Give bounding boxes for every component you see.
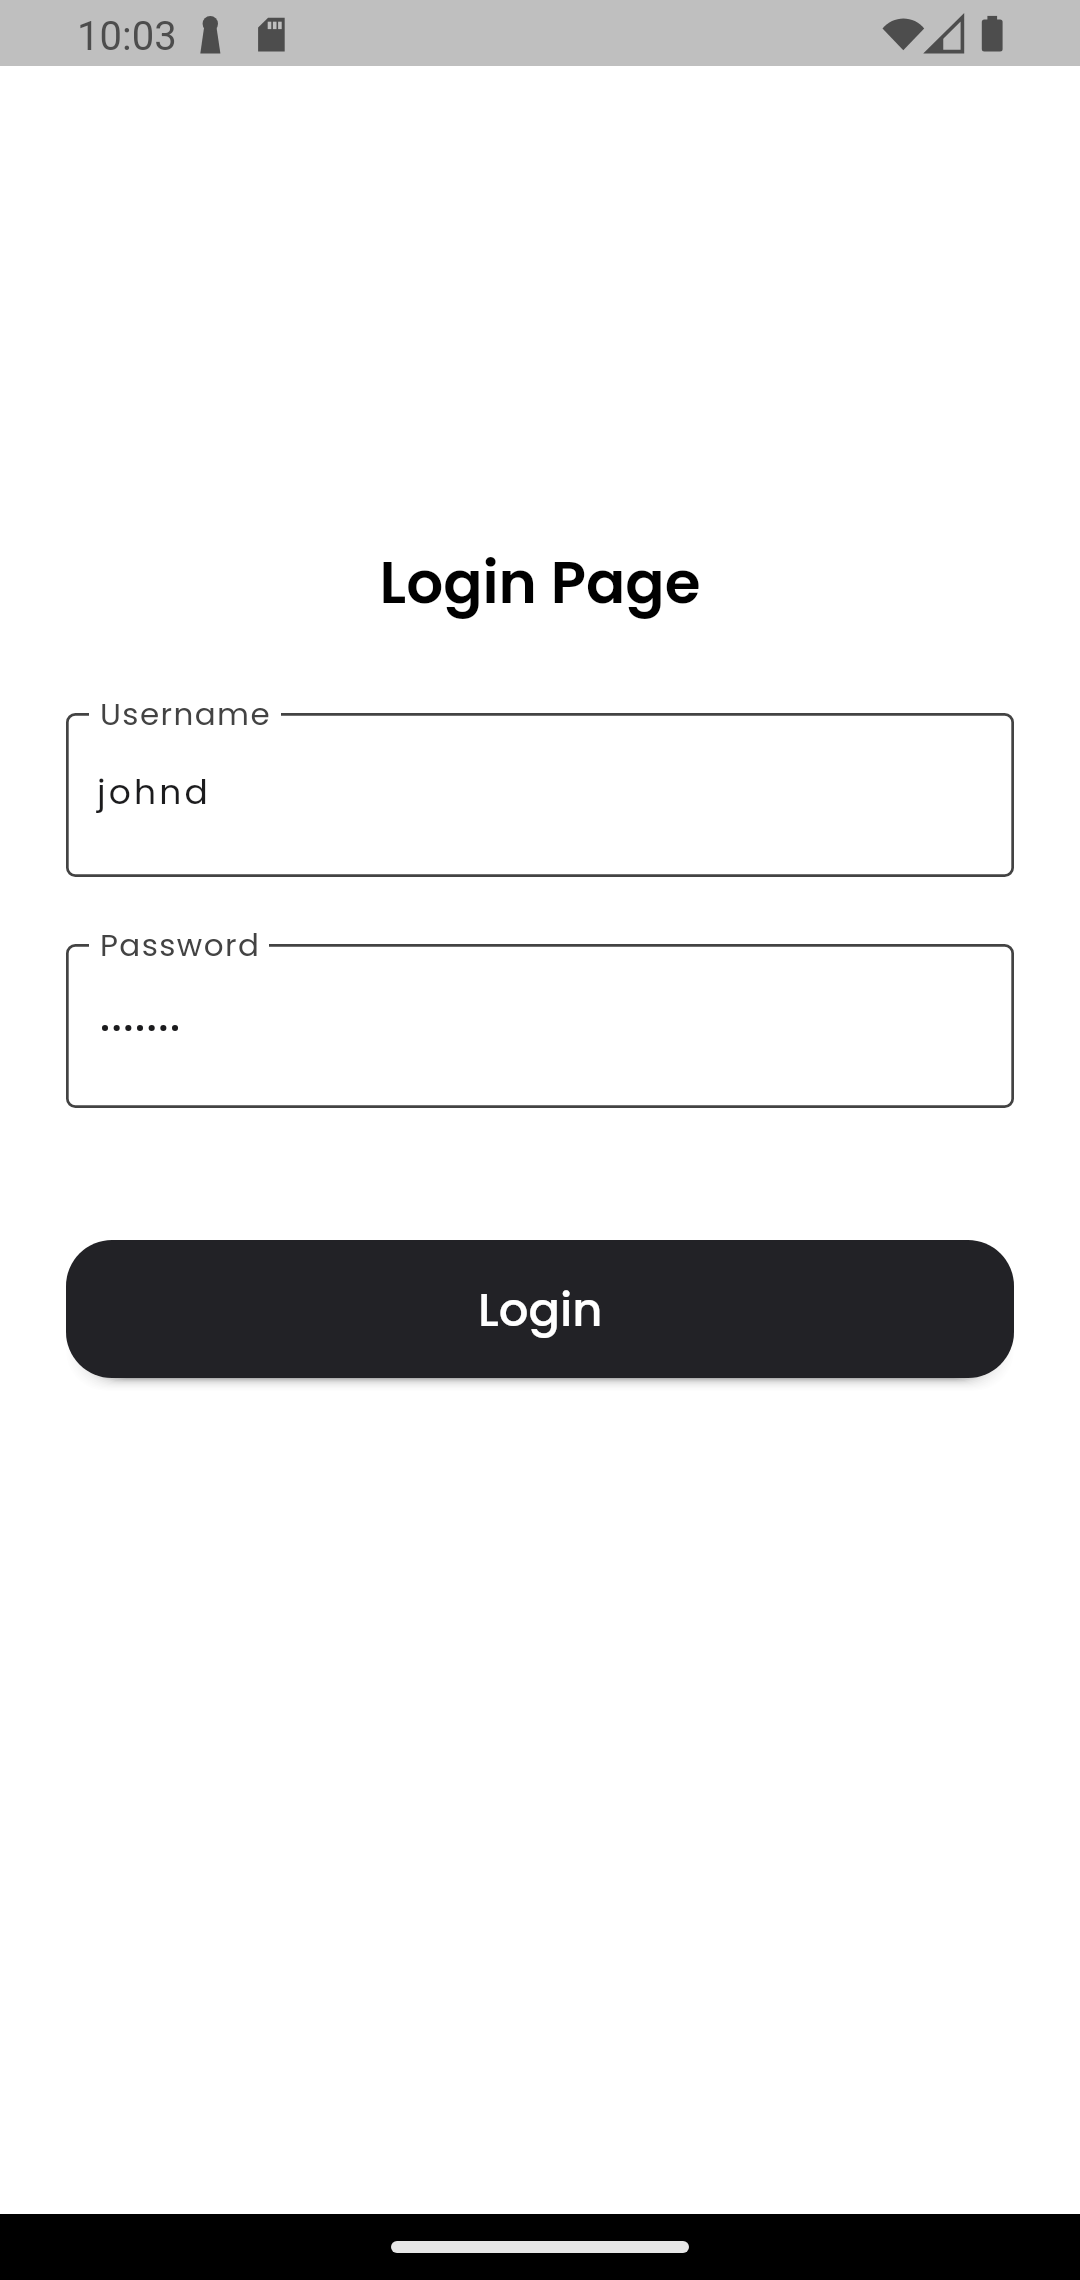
button[interactable]: Username [66,713,1014,877]
staticText: Password [100,923,261,966]
staticText: 10:03 [77,13,177,60]
other: Password hidden [102,1022,182,1034]
button[interactable]: Login [66,1240,1014,1378]
staticText: Login Page [0,542,1080,623]
staticText: Login [478,1277,603,1342]
staticText: johnd [97,768,212,816]
button[interactable]: Password [66,944,1014,1108]
staticText: Username [100,692,272,735]
